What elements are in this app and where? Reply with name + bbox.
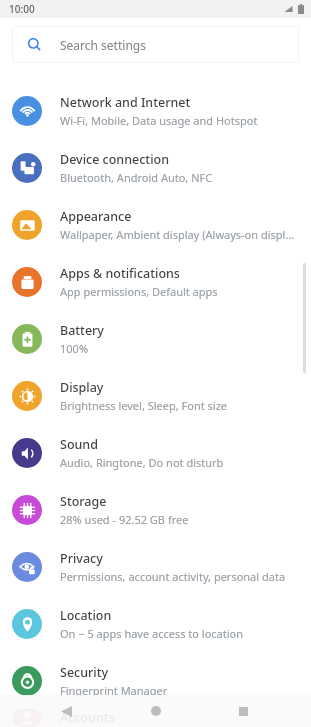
staticText: Appearance <box>60 208 132 225</box>
button[interactable]: Security <box>0 652 311 709</box>
staticText: Apps & notifications <box>60 265 180 282</box>
button[interactable]: Location <box>0 595 311 652</box>
staticText: Search settings <box>60 37 146 53</box>
staticText: Brightness level, Sleep, Font size <box>60 398 228 413</box>
staticText: Display <box>60 379 104 396</box>
button[interactable]: Appearance <box>0 196 311 253</box>
staticText: App permissions, Default apps <box>60 284 218 299</box>
staticText: Wi-Fi, Mobile, Data usage and Hotspot <box>60 113 258 128</box>
staticText: Wallpaper, Ambient display (Always-on di… <box>60 227 299 242</box>
staticText: Storage <box>60 493 107 510</box>
staticText: Permissions, account activity, personal … <box>60 569 286 584</box>
button[interactable]: Home <box>143 698 169 724</box>
staticText: Privacy <box>60 550 103 567</box>
staticText: Network and Internet <box>60 94 191 111</box>
button[interactable]: Device connection <box>0 139 311 196</box>
button[interactable]: Privacy <box>0 538 311 595</box>
staticText: On − 5 apps have access to location <box>60 626 244 641</box>
staticText: Battery <box>60 322 104 339</box>
button[interactable]: Sound <box>0 424 311 481</box>
staticText: Accounts <box>60 709 115 726</box>
staticText: Audio, Ringtone, Do not disturb <box>60 455 224 470</box>
button[interactable]: Battery <box>0 310 311 367</box>
button[interactable]: Display <box>0 367 311 424</box>
staticText: Security <box>60 664 109 681</box>
staticText: 100% <box>60 341 89 356</box>
button[interactable]: Apps & notifications <box>0 253 311 310</box>
staticText: 10:00 <box>9 2 35 16</box>
staticText: Device connection <box>60 151 169 168</box>
staticText: Bluetooth, Android Auto, NFC <box>60 170 213 185</box>
staticText: 28% used - 92.52 GB free <box>60 512 189 527</box>
button[interactable]: Storage <box>0 481 311 538</box>
staticText: Sound <box>60 436 98 453</box>
staticText: Location <box>60 607 112 624</box>
button[interactable]: Recent apps <box>230 698 256 724</box>
button[interactable]: Network and Internet <box>0 82 311 139</box>
button[interactable]: Search settings <box>12 26 299 63</box>
staticText: Fingerprint Manager <box>60 683 168 698</box>
button[interactable]: Accounts <box>0 709 311 727</box>
button[interactable]: Back <box>53 698 79 724</box>
